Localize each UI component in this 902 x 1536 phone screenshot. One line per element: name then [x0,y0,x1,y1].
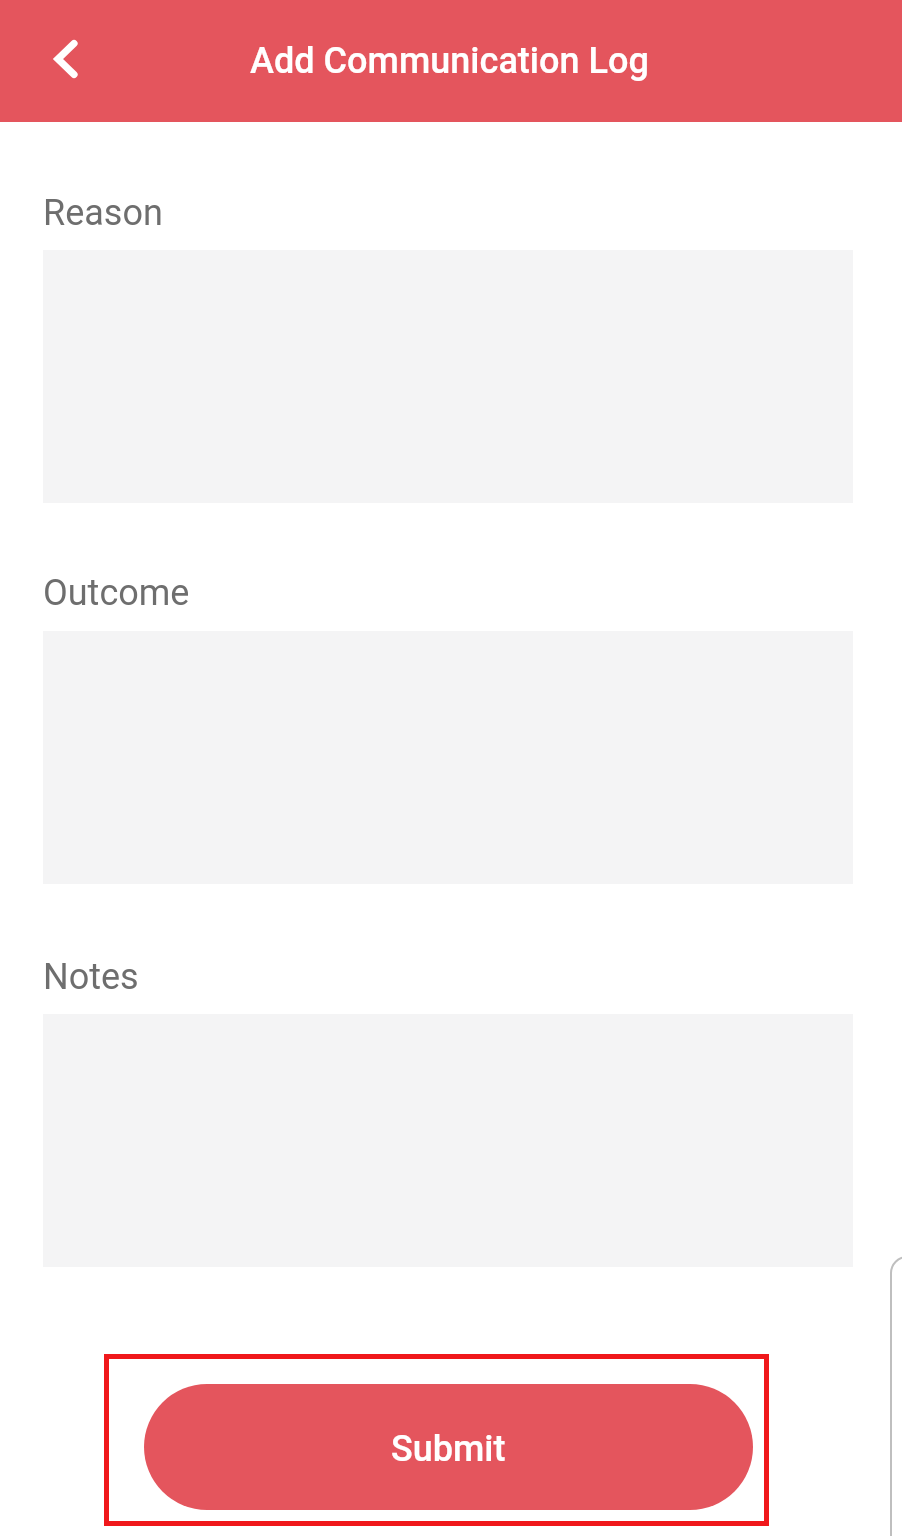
staticText: Reason [43,192,163,234]
button[interactable]: Back [20,13,112,105]
staticText: Notes [43,956,139,998]
button[interactable]: Submit [144,1384,753,1510]
staticText: Outcome [43,572,190,614]
staticText: Submit [391,1428,506,1470]
staticText: Add Communication Log [250,40,649,82]
